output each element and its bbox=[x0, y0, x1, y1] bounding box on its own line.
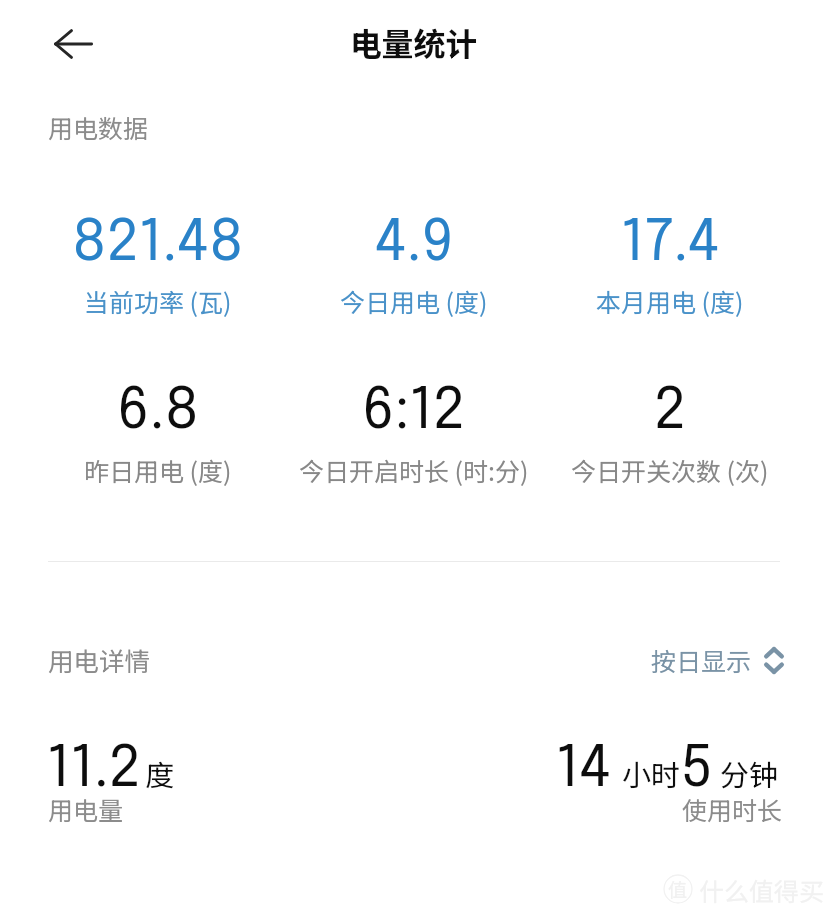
button[interactable]: Back bbox=[44, 15, 102, 73]
staticText: 分钟 bbox=[720, 752, 779, 794]
staticText: 6:12 bbox=[362, 383, 466, 441]
staticText: 今日开关次数 (次) bbox=[571, 452, 769, 488]
staticText: 当前功率 (瓦) bbox=[84, 283, 232, 319]
staticText: 按日显示 bbox=[651, 642, 752, 678]
staticText: 电量统计 bbox=[350, 19, 478, 65]
staticText: 2 bbox=[654, 383, 687, 441]
staticText: 用电量 bbox=[48, 791, 124, 827]
staticText: 821.48 bbox=[72, 215, 244, 273]
staticText: 6.8 bbox=[117, 383, 200, 441]
staticText: 11.2 bbox=[47, 741, 142, 799]
staticText: 17.4 bbox=[621, 215, 720, 273]
staticText: 小时 bbox=[622, 752, 681, 794]
staticText: 度 bbox=[145, 752, 175, 794]
button[interactable]: 按日显示 bbox=[651, 642, 784, 678]
staticText: 今日开启时长 (时:分) bbox=[299, 452, 529, 488]
staticText: 5 bbox=[681, 741, 714, 799]
staticText: 14 bbox=[556, 741, 612, 799]
staticText: 值 bbox=[668, 875, 688, 903]
staticText: 用电详情 bbox=[48, 641, 151, 678]
staticText: 今日用电 (度) bbox=[340, 283, 488, 319]
staticText: 用电数据 bbox=[48, 109, 149, 145]
staticText: 使用时长 bbox=[682, 791, 783, 827]
staticText: 本月用电 (度) bbox=[596, 283, 744, 319]
staticText: 什么值得买 bbox=[699, 872, 825, 908]
staticText: 4.9 bbox=[375, 215, 454, 273]
staticText: 昨日用电 (度) bbox=[84, 452, 232, 488]
